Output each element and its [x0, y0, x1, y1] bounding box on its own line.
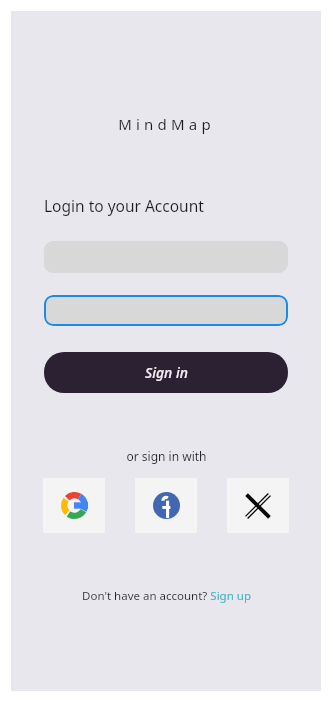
button[interactable]: Don't have an account? Sign up — [82, 588, 251, 604]
button[interactable]: Sign in with Facebook — [135, 478, 197, 533]
staticText: Login to your Account — [44, 195, 204, 216]
staticText: or sign in with — [126, 448, 207, 464]
button[interactable] — [44, 295, 288, 326]
button[interactable]: Sign in with X — [227, 478, 289, 533]
staticText: MindMap — [118, 114, 215, 134]
staticText: Don't have an account? Sign up — [82, 588, 251, 604]
button[interactable]: Sign in — [44, 352, 288, 393]
staticText: Sign in — [145, 363, 188, 382]
button[interactable]: Sign in with Google — [43, 478, 105, 533]
